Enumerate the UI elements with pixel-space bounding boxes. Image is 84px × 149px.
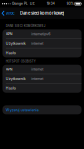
staticText: Użytkownik xyxy=(6,41,26,46)
staticText: Orange PL xyxy=(11,2,28,6)
button[interactable]: Użytkownik xyxy=(2,39,81,48)
button[interactable]: APN xyxy=(2,65,81,74)
staticText: 93% xyxy=(67,2,75,6)
staticText: HOTSPOT OSOBISTY xyxy=(6,60,36,63)
staticText: internet xyxy=(31,41,43,46)
staticText: Wróć xyxy=(5,11,14,16)
staticText: Dane sieci komórkowej xyxy=(20,11,64,16)
staticText: 19:34 xyxy=(47,2,55,6)
staticText: internetipv6 xyxy=(31,32,50,36)
staticText: Wyzeruj ustawienia xyxy=(6,108,39,112)
staticText: APN xyxy=(6,67,13,71)
staticText: Użytkownik xyxy=(6,77,26,81)
button[interactable]: Hasło xyxy=(2,48,81,57)
staticText: internet xyxy=(31,67,43,71)
button[interactable]: Hasło xyxy=(2,84,81,93)
button[interactable]: Użytkownik xyxy=(2,74,81,83)
button[interactable]: APN xyxy=(2,29,81,38)
staticText: DANE SIECI KOMÓRKOWEJ xyxy=(6,24,46,28)
staticText: APN xyxy=(6,32,13,36)
button[interactable]: Wróć xyxy=(0,7,16,19)
staticText: LTE xyxy=(28,2,35,6)
staticText: Hasło xyxy=(6,51,16,55)
button[interactable]: Wyzeruj ustawienia xyxy=(2,105,81,114)
staticText: Hasło xyxy=(6,86,16,90)
staticText: internet xyxy=(31,77,43,81)
